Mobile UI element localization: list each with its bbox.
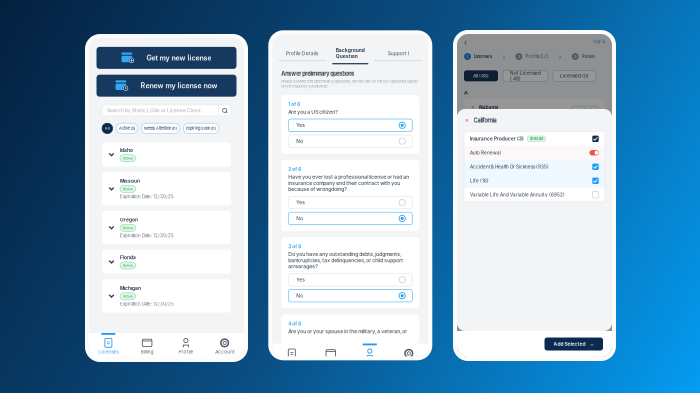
staticText: Licenses <box>282 360 302 365</box>
button[interactable]: Needs Attention (0) <box>141 123 180 134</box>
staticText: 3 of 6 <box>288 244 301 249</box>
staticText: Insurance Producer (3) <box>470 136 524 141</box>
button[interactable]: Insurance Producer (3) <box>464 132 605 146</box>
staticText: Answer preliminary questions <box>281 70 354 77</box>
button[interactable]: Support I <box>374 44 422 61</box>
staticText: Support I <box>388 50 409 56</box>
staticText: Do you have any outstanding debts, judgm… <box>288 251 403 269</box>
staticText: $193.60 <box>530 137 543 141</box>
staticText: Are you or your spouse in the military, … <box>288 328 407 334</box>
staticText: Oregon <box>120 217 138 223</box>
button[interactable]: Variable Life And Variable Annuity (6952… <box>464 188 605 202</box>
button[interactable]: Add Selected <box>544 337 603 350</box>
button[interactable]: Profile <box>350 345 389 365</box>
staticText: Yes <box>296 122 305 128</box>
staticText: All (48) <box>473 73 489 79</box>
staticText: ‹ <box>464 37 467 47</box>
staticText: Active <box>123 263 133 268</box>
staticText: Expiration Date: 12/30/25 <box>120 233 174 238</box>
staticText: 1 <box>466 54 468 59</box>
button[interactable]: Oregon <box>102 211 231 244</box>
button[interactable]: Licenses <box>272 345 311 365</box>
staticText: Not Licensed ( 48) <box>510 70 541 81</box>
button[interactable]: Yes <box>288 119 412 132</box>
staticText: Active <box>123 187 133 191</box>
button[interactable]: All (48) <box>464 70 498 81</box>
staticText: 2 <box>518 54 520 59</box>
staticText: Idaho <box>120 147 133 153</box>
button[interactable]: No <box>288 135 412 147</box>
button[interactable]: Profile <box>166 335 205 355</box>
staticText: Active <box>123 156 133 160</box>
button[interactable]: Search by State, LOAs or License Class <box>102 105 231 116</box>
button[interactable]: Expiring Soon (0) <box>183 123 219 134</box>
button[interactable]: Licenses <box>89 335 128 355</box>
button[interactable]: Missouri <box>102 172 231 205</box>
button[interactable]: Account <box>389 345 428 365</box>
staticText: Licenses <box>474 54 492 59</box>
button[interactable]: Renew my license now <box>96 75 236 97</box>
staticText: Licenses <box>98 349 118 355</box>
button[interactable]: Not Licensed ( 48) <box>503 70 548 81</box>
staticText: Life (16) <box>470 178 489 183</box>
staticText: No <box>296 215 303 221</box>
button[interactable]: Billing <box>128 335 167 355</box>
staticText: Florida <box>120 255 136 260</box>
staticText: Profile 2/3 <box>525 54 548 59</box>
staticText: 3 <box>574 54 576 59</box>
button[interactable]: Auto Renewal <box>464 146 605 160</box>
staticText: Are you a US citizen? <box>288 109 338 115</box>
staticText: All <box>105 126 110 131</box>
button[interactable]: Yes <box>288 273 412 286</box>
staticText: Variable Life And Variable Annuity (6952… <box>470 192 565 197</box>
staticText: Background Question <box>336 47 365 59</box>
staticText: No <box>296 293 303 299</box>
staticText: Add Selected <box>553 341 585 347</box>
staticText: Have you ever lost a professional licens… <box>288 174 409 192</box>
button[interactable]: No <box>288 289 412 302</box>
staticText: Active <box>123 226 133 230</box>
button[interactable]: No <box>288 212 412 225</box>
staticText: Profile Details <box>286 50 319 56</box>
button[interactable]: Active (5) <box>116 123 138 134</box>
button[interactable]: Accident & Health Or Sickness (935) <box>464 160 605 174</box>
button[interactable]: Michigan <box>102 279 231 313</box>
button[interactable]: Profile Details <box>278 44 326 61</box>
button[interactable]: All <box>102 123 113 134</box>
staticText: Expiration Date: 12/30/25 <box>120 194 174 199</box>
staticText: Renew my license now <box>140 81 217 90</box>
staticText: Get my new license <box>146 54 211 62</box>
button[interactable]: Yes <box>288 196 412 209</box>
staticText: Expiring Soon (0) <box>186 126 216 131</box>
staticText: Billing <box>324 360 337 365</box>
staticText: 1 of 6 <box>288 101 300 107</box>
staticText: + Add <box>578 108 592 113</box>
staticText: Auto Renewal <box>470 150 501 155</box>
staticText: Search by State, LOAs or License Class <box>107 107 201 113</box>
staticText: Yes <box>296 200 305 205</box>
button[interactable]: Account <box>205 335 244 355</box>
button[interactable]: Get my new license <box>96 47 236 69</box>
staticText: A <box>464 89 468 96</box>
button[interactable]: Florida <box>102 250 231 274</box>
staticText: Yes <box>296 277 305 283</box>
button[interactable]: + Add <box>572 106 598 115</box>
staticText: Alabama <box>478 104 498 110</box>
staticText: ✕ <box>471 105 475 110</box>
staticText: › <box>502 52 505 61</box>
button[interactable]: Life (16) <box>464 174 605 188</box>
staticText: 2 of 6 <box>288 166 301 172</box>
staticText: ⌄ <box>590 341 594 347</box>
staticText: 1 of 4 <box>593 39 605 45</box>
button[interactable]: Licensed (0) <box>553 70 596 81</box>
staticText: › <box>559 52 562 61</box>
staticText: Billing <box>141 349 154 355</box>
staticText: Account <box>215 349 234 355</box>
staticText: Michigan <box>120 285 141 291</box>
staticText: Active <box>123 294 133 298</box>
button[interactable]: Billing <box>311 345 350 365</box>
button[interactable]: Idaho <box>102 142 231 166</box>
staticText: Please Answer few preliminary questions,… <box>281 79 417 88</box>
button[interactable]: Background Question <box>326 41 374 64</box>
